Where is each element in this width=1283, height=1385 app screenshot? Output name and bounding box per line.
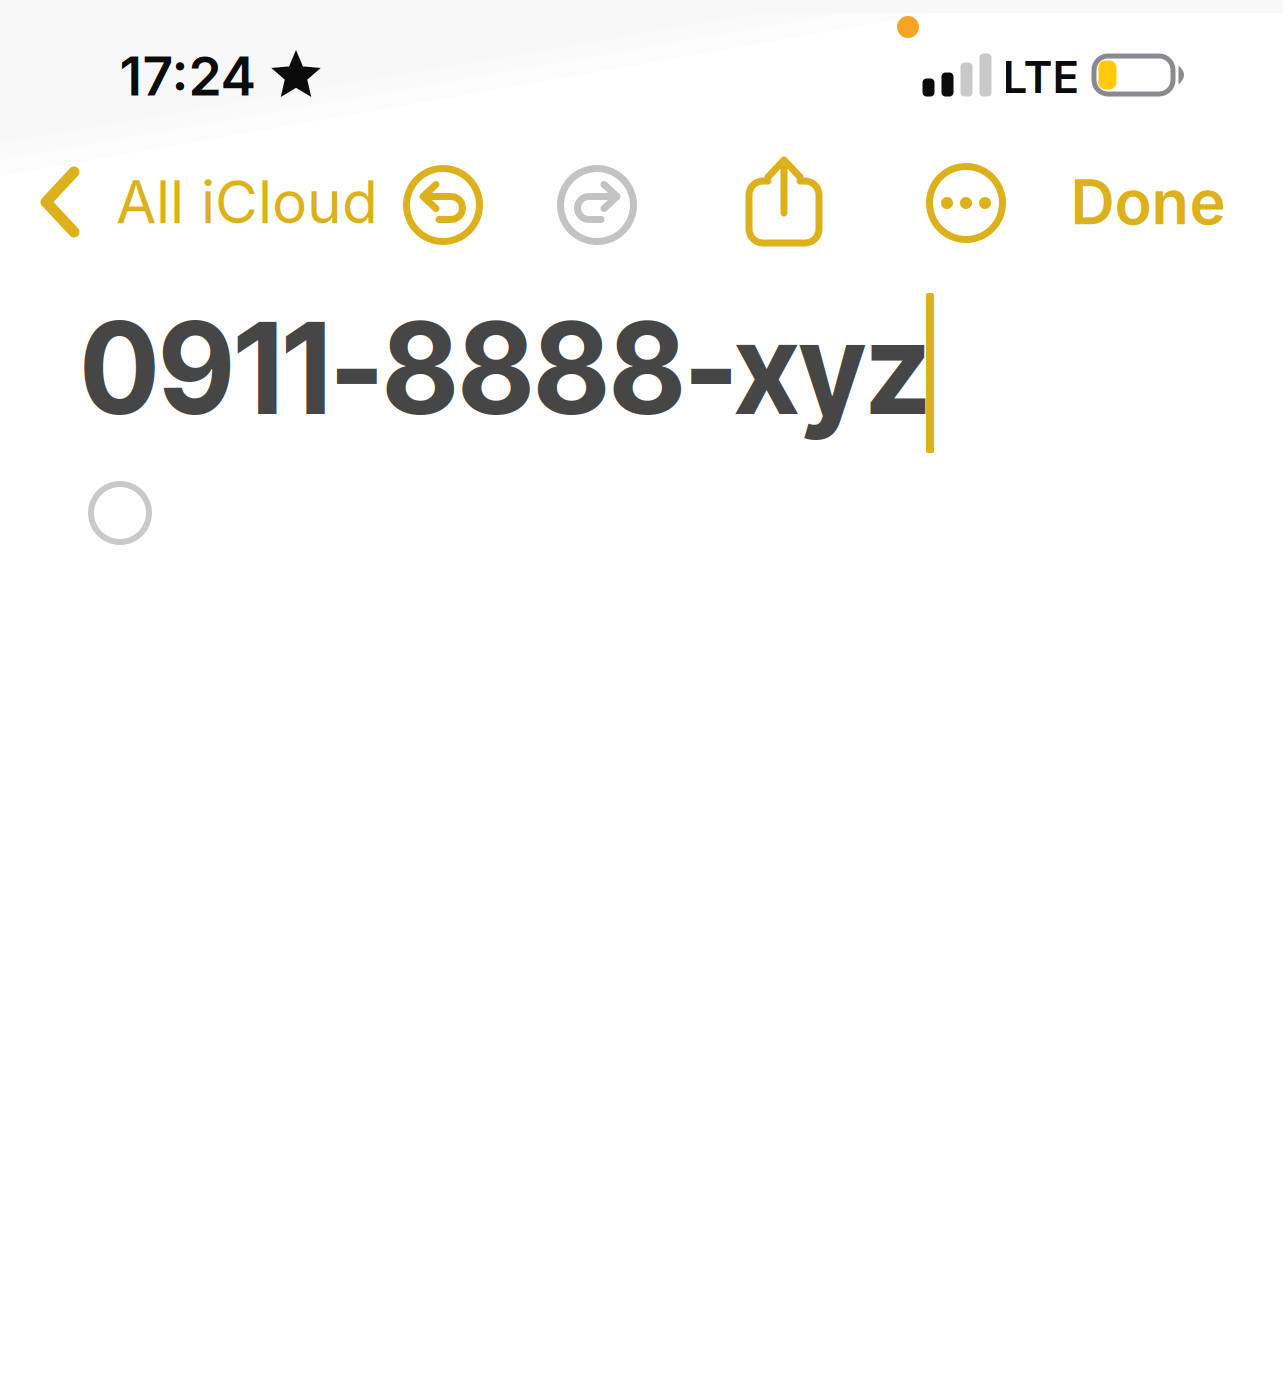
button[interactable]: Checklist item [54, 447, 186, 579]
staticText: 0911-8888-xyz [55, 291, 954, 445]
button[interactable]: Undo [377, 139, 509, 271]
staticText: 17:24 [119, 44, 256, 108]
button[interactable]: More [900, 137, 1032, 269]
staticText: LTE [1002, 50, 1079, 104]
staticText: All iCloud [116, 166, 378, 237]
staticText: Done [1070, 165, 1225, 239]
button[interactable]: Redo [531, 139, 663, 271]
button[interactable]: All iCloud [36, 156, 408, 248]
button[interactable]: Share [718, 135, 850, 267]
button[interactable]: Done [1066, 158, 1230, 246]
